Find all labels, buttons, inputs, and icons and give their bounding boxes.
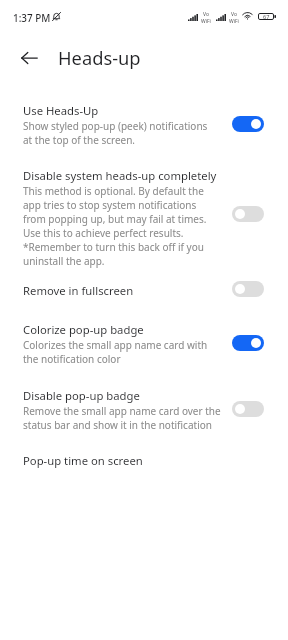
button[interactable]: Remove in fullscreen <box>0 283 288 299</box>
button[interactable]: Toggle off <box>232 281 264 297</box>
staticText: app tries to stop system notifications <box>23 198 197 212</box>
staticText: uninstall the app. <box>23 254 105 268</box>
button[interactable]: Toggle off <box>232 206 264 222</box>
button[interactable]: Toggle on <box>232 116 264 132</box>
button[interactable]: Colorize pop-up badge <box>0 323 288 366</box>
button[interactable]: Use Heads-Up <box>0 104 288 147</box>
staticText: 1:37 PM <box>13 11 51 24</box>
button[interactable]: Toggle off <box>232 401 264 417</box>
staticText: from popping up, but may fail at times. <box>23 212 207 226</box>
staticText: Colorizes the small app name card with <box>23 338 208 352</box>
staticText: Disable system heads-up completely <box>23 169 217 183</box>
button[interactable]: Toggle on <box>232 335 264 351</box>
staticText: This method is optional. By default the <box>23 184 204 198</box>
staticText: *Remember to turn this back off if you <box>23 240 204 254</box>
staticText: status bar and show it in the notificati… <box>23 418 212 432</box>
button[interactable]: Disable system heads-up completely <box>0 169 288 268</box>
staticText: at the top of the screen. <box>23 133 136 147</box>
staticText: WiFi <box>229 18 239 25</box>
button[interactable]: Disable pop-up badge <box>0 389 288 432</box>
staticText: 67 <box>263 13 270 21</box>
staticText: Remove the small app name card over the <box>23 404 221 418</box>
button[interactable]: Back <box>11 40 47 76</box>
button[interactable]: Pop-up time on screen <box>0 454 288 469</box>
staticText: the notification color <box>23 352 121 366</box>
staticText: Remove in fullscreen <box>23 284 134 298</box>
staticText: Colorize pop-up badge <box>23 323 144 337</box>
staticText: Use Heads-Up <box>23 104 99 118</box>
staticText: Use this to achieve perfect results. <box>23 226 184 240</box>
staticText: Pop-up time on screen <box>23 454 143 468</box>
staticText: Disable pop-up badge <box>23 389 140 403</box>
staticText: Heads-up <box>58 45 141 70</box>
staticText: WiFi <box>201 18 211 25</box>
staticText: Show styled pop-up (peek) notifications <box>23 119 208 133</box>
staticText: Vo <box>231 11 237 18</box>
staticText: Vo <box>203 11 209 18</box>
